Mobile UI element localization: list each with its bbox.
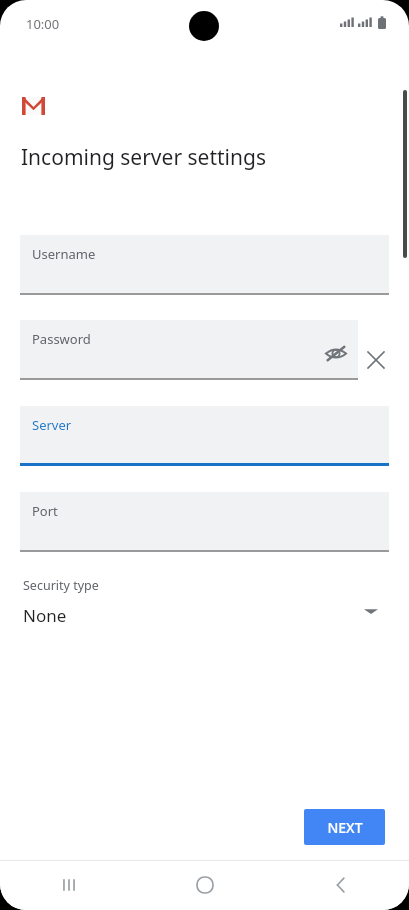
button[interactable]: Show password [320, 337, 352, 369]
staticText: 10:00 [26, 15, 60, 33]
button[interactable]: Back [273, 860, 409, 910]
button[interactable]: Home [137, 860, 273, 910]
staticText: Port [32, 502, 58, 520]
button[interactable]: Server [20, 406, 389, 467]
staticText: Incoming server settings [21, 143, 266, 172]
staticText: Security type [23, 577, 99, 594]
staticText: Server [32, 416, 72, 434]
staticText: Username [32, 245, 96, 263]
button[interactable]: Port [20, 492, 389, 553]
button[interactable]: Username [20, 235, 389, 296]
staticText: NEXT [327, 818, 363, 837]
button[interactable]: Security type [12, 570, 390, 640]
button[interactable]: Clear [362, 346, 390, 374]
button[interactable]: NEXT [304, 809, 385, 845]
staticText: None [23, 604, 67, 627]
button[interactable]: Password [20, 320, 358, 381]
staticText: Password [32, 330, 91, 348]
button[interactable]: Recent apps [0, 860, 137, 910]
